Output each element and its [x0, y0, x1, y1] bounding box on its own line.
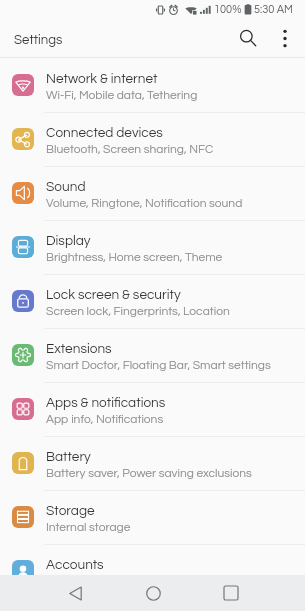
staticText: Wi-Fi, Mobile data, Tethering	[46, 89, 198, 101]
staticText: Display	[46, 234, 91, 248]
staticText: 5:30 AM	[254, 4, 293, 15]
staticText: Screen lock, Fingerprints, Location	[46, 305, 230, 317]
button[interactable]: Display	[0, 220, 305, 274]
button[interactable]: Lock screen & security	[0, 274, 305, 328]
staticText: Extensions	[46, 342, 112, 356]
button[interactable]: Apps & notifications	[0, 382, 305, 436]
staticText: Smart Doctor, Floating Bar, Smart settin…	[46, 359, 271, 371]
staticText: 100%	[214, 4, 242, 15]
staticText: Connected devices	[46, 126, 163, 140]
staticText: Network & internet	[46, 72, 158, 86]
staticText: Lock screen & security	[46, 288, 181, 302]
staticText: Battery	[46, 450, 91, 464]
staticText: Battery saver, Power saving exclusions	[46, 467, 252, 479]
button[interactable]: Accounts	[0, 544, 305, 598]
button[interactable]: Storage	[0, 490, 305, 544]
staticText: Volume, Ringtone, Notification sound	[46, 197, 243, 209]
button[interactable]: Search	[231, 21, 265, 55]
button[interactable]: Recents	[214, 576, 248, 610]
staticText: Sound	[46, 180, 86, 194]
button[interactable]: Extensions	[0, 328, 305, 382]
staticText: App info, Notifications	[46, 413, 164, 425]
staticText: Accounts	[46, 558, 104, 572]
button[interactable]: Network & internet	[0, 58, 305, 112]
button[interactable]: Sound	[0, 166, 305, 220]
button[interactable]: More options	[268, 21, 302, 55]
button[interactable]: Battery	[0, 436, 305, 490]
staticText: Apps & notifications	[46, 396, 166, 410]
button[interactable]: Back	[58, 576, 92, 610]
staticText: Storage	[46, 504, 95, 518]
staticText: Bluetooth, Screen sharing, NFC	[46, 143, 214, 155]
button[interactable]: Connected devices	[0, 112, 305, 166]
staticText: Settings	[14, 33, 63, 47]
button[interactable]: Home	[136, 576, 170, 610]
staticText: Internal storage	[46, 521, 131, 533]
staticText: Brightness, Home screen, Theme	[46, 251, 223, 263]
